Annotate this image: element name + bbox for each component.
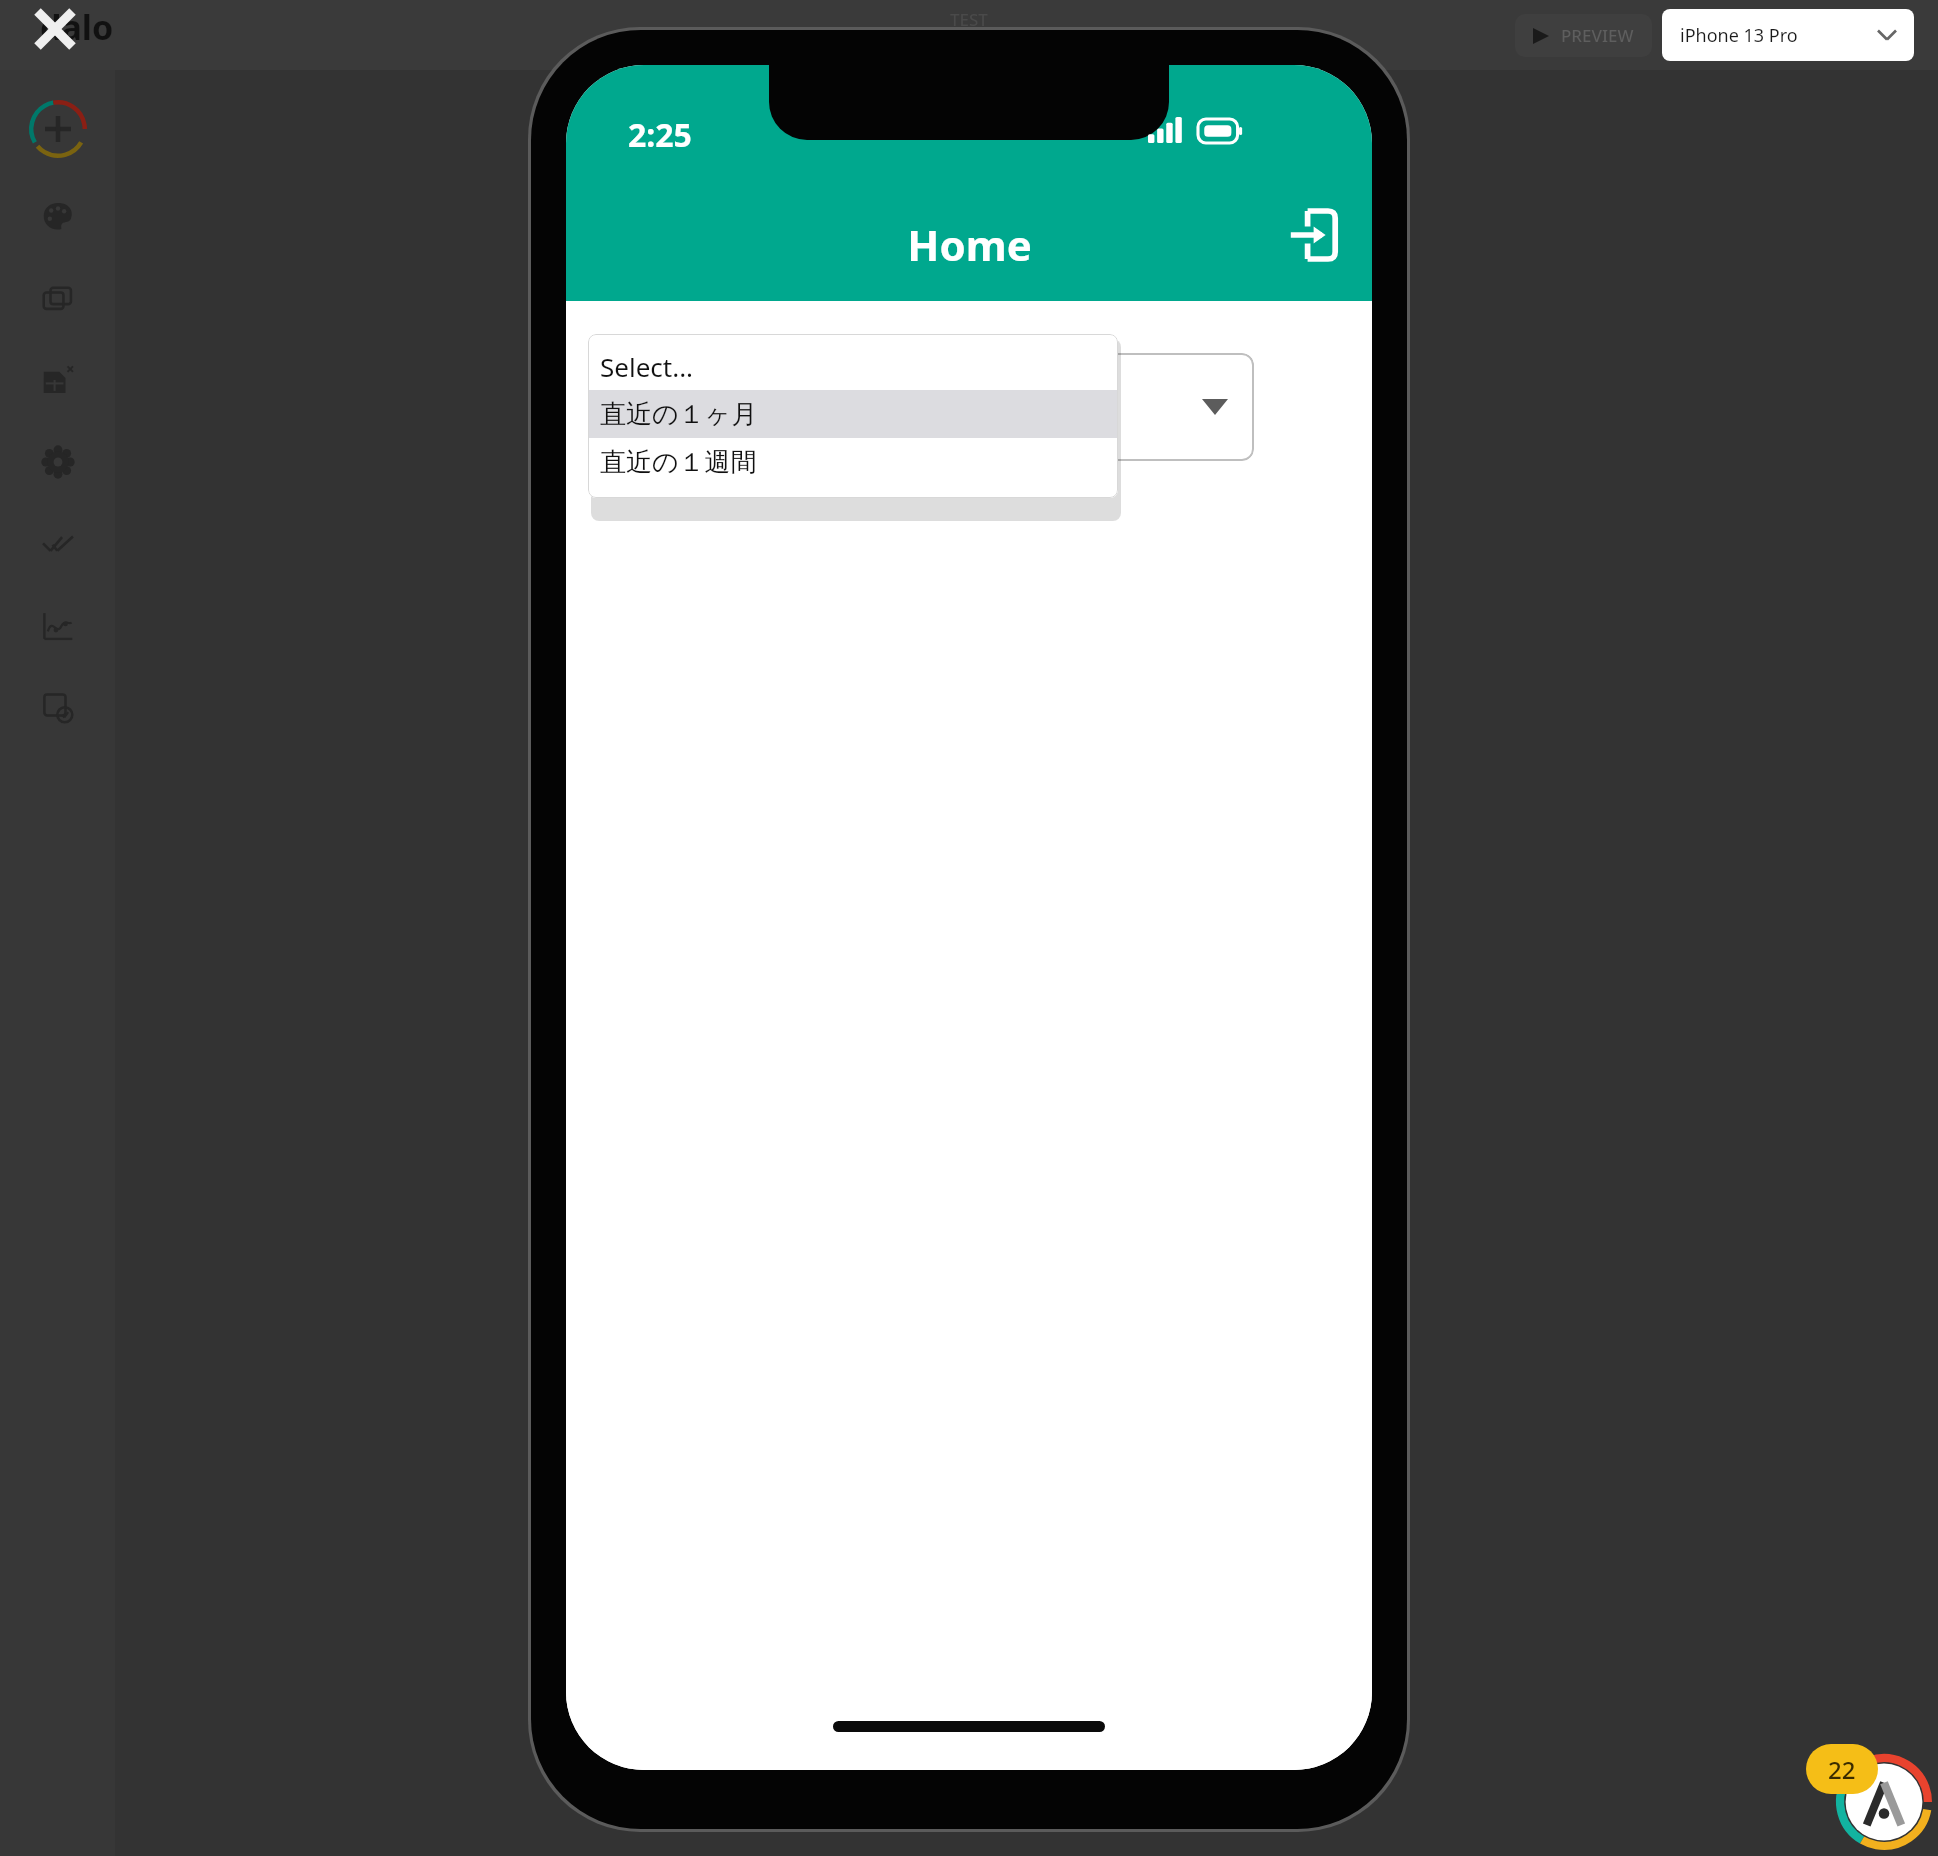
button[interactable]: Select... [588,342,1118,390]
button[interactable]: iPhone 13 Pro [1662,9,1914,61]
button[interactable]: Settings [36,440,80,484]
button[interactable]: Log out [1274,199,1346,271]
staticText: Home [907,216,1032,273]
button[interactable]: Screens [36,276,80,320]
button[interactable] [694,353,1254,461]
staticText: 直近の１ヶ月 [600,398,758,431]
button[interactable]: Theme [36,194,80,238]
button[interactable]: Add [29,100,87,158]
button[interactable]: Checks [36,522,80,566]
staticText: dalo [40,4,114,50]
button[interactable]: Help [1836,1754,1932,1850]
staticText: Select... [600,349,694,384]
button[interactable]: 直近の１ヶ月 [588,390,1118,438]
button[interactable]: Data [36,358,80,402]
staticText: 22 [1828,1753,1856,1786]
staticText: 直近の１週間 [600,446,757,479]
staticText: 2:25 [628,113,692,157]
button[interactable]: Publish [36,686,80,730]
staticText: TEST [950,8,988,31]
button[interactable]: Analytics [36,604,80,648]
button[interactable]: PREVIEW [1515,14,1652,57]
button[interactable]: 22 [1806,1744,1878,1794]
button[interactable]: 直近の１週間 [588,438,1118,486]
staticText: PREVIEW [1561,24,1634,47]
staticText: iPhone 13 Pro [1680,23,1798,48]
